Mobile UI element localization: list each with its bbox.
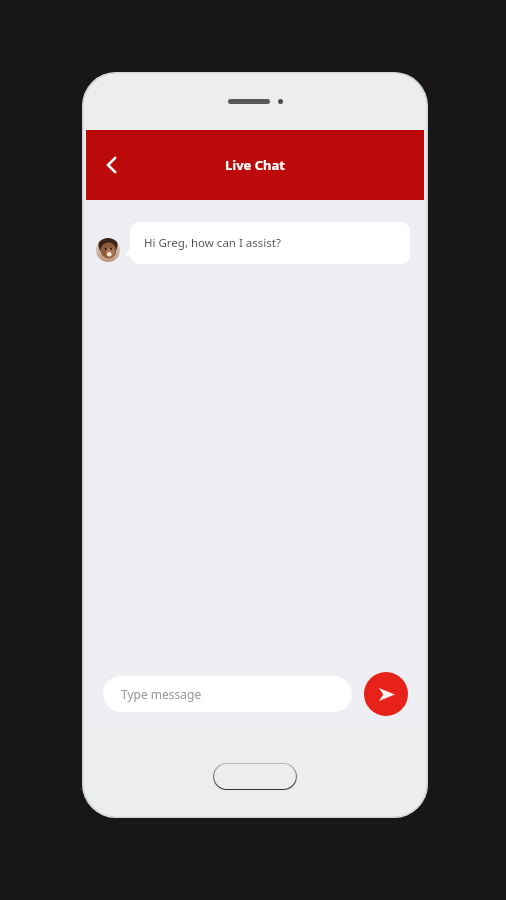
staticText: Live Chat bbox=[225, 156, 285, 174]
button[interactable]: Hi Greg, how can I assist? bbox=[130, 222, 410, 264]
button[interactable]: Back bbox=[91, 144, 133, 186]
button[interactable]: Send bbox=[364, 672, 408, 716]
button[interactable]: Home bbox=[213, 763, 297, 790]
staticText: Type message bbox=[121, 686, 202, 702]
staticText: Hi Greg, how can I assist? bbox=[144, 235, 281, 251]
button[interactable]: Type message bbox=[103, 676, 352, 712]
